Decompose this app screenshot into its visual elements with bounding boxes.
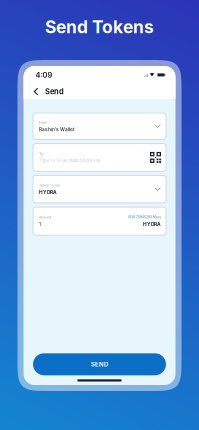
- staticText: HYDRA: [143, 221, 161, 227]
- staticText: SEND: [91, 361, 108, 368]
- button[interactable]: Back: [30, 84, 41, 99]
- staticText: Send Tokens: [45, 17, 154, 37]
- button[interactable]: From: [33, 113, 166, 139]
- button[interactable]: Amount: [33, 207, 166, 235]
- staticText: Type or Scan Wallet Address: [39, 158, 100, 163]
- staticText: (530.70945293 Max): [128, 215, 161, 219]
- staticText: 1: [39, 221, 41, 227]
- staticText: Amount: [39, 215, 51, 219]
- staticText: To: [39, 152, 43, 156]
- staticText: From: [39, 120, 47, 124]
- staticText: Token / Coin: [39, 183, 60, 187]
- staticText: 4:09: [35, 71, 52, 79]
- staticText: Rashin's Wallet: [39, 127, 75, 132]
- staticText: HYDRA: [39, 190, 57, 195]
- staticText: Send: [45, 87, 64, 96]
- button[interactable]: To: [33, 144, 166, 171]
- button[interactable]: Token / Coin: [33, 175, 166, 203]
- button[interactable]: SEND: [33, 353, 166, 375]
